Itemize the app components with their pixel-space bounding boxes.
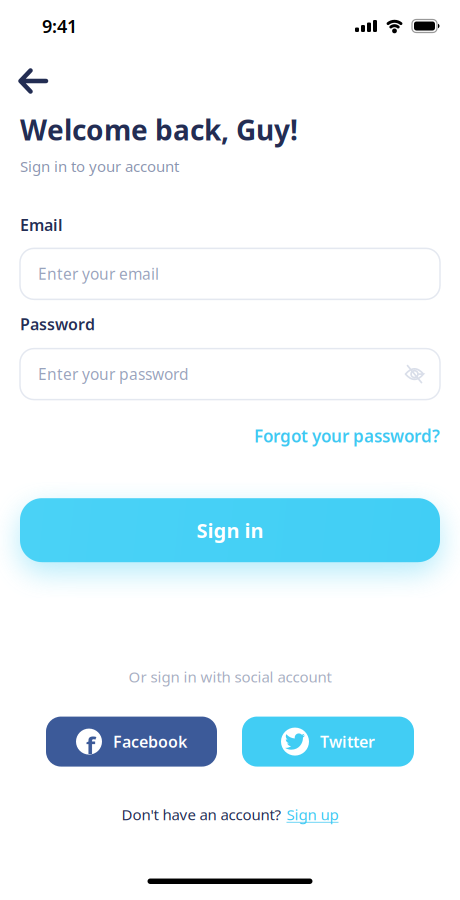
staticText: Twitter [320, 731, 375, 752]
staticText: Sign in to your account [20, 156, 179, 176]
staticText: Welcome back, Guy! [20, 111, 298, 148]
staticText: Sign up [286, 805, 338, 824]
staticText: Forgot your password? [254, 425, 440, 447]
staticText: Don't have an account? [121, 805, 281, 824]
staticText: Facebook [113, 731, 187, 752]
button[interactable]: Sign up [286, 805, 338, 824]
button[interactable]: Back [0, 68, 48, 94]
button[interactable]: Show password [404, 365, 440, 383]
staticText: Email [20, 214, 63, 235]
staticText: f [86, 729, 95, 761]
button[interactable]: f [46, 717, 217, 767]
staticText: Sign in [196, 517, 263, 543]
button[interactable]: Twitter [242, 717, 414, 767]
staticText: Enter your password [38, 364, 189, 384]
button[interactable]: Forgot your password? [254, 425, 440, 447]
button[interactable]: Sign in [20, 498, 440, 562]
staticText: Password [20, 313, 95, 334]
staticText: Enter your email [38, 264, 159, 284]
staticText: Or sign in with social account [128, 667, 331, 687]
staticText: 9:41 [42, 14, 77, 38]
